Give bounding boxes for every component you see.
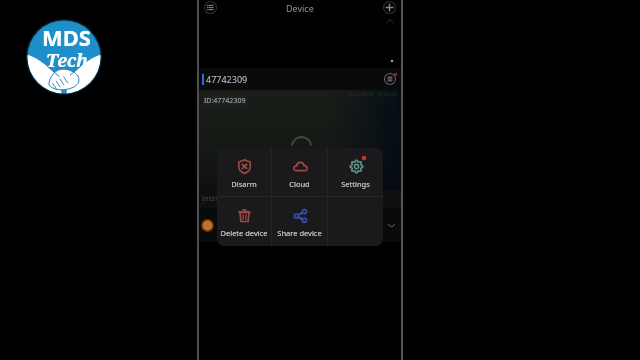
staticText: 2023-08-02 15:53:24 [348, 91, 397, 98]
button[interactable]: Device options [384, 73, 396, 85]
button[interactable]: Expand [387, 221, 396, 230]
staticText: 47742309 [206, 73, 248, 85]
staticText: Settings [341, 179, 370, 189]
button[interactable]: Share device [272, 197, 327, 246]
staticText: Share device [277, 228, 322, 238]
staticText: Delete device [220, 228, 268, 238]
button[interactable]: Cloud [272, 148, 327, 196]
staticText: Intercom [202, 194, 233, 204]
button[interactable]: Delete device [217, 197, 271, 246]
staticText: Device [286, 2, 314, 14]
staticText: Disarm [231, 179, 257, 189]
staticText: ID:47742309 [204, 96, 246, 106]
button[interactable]: Settings [328, 148, 383, 196]
staticText: Cloud [289, 179, 310, 189]
button[interactable]: Add device [383, 1, 396, 14]
button[interactable]: Disarm [217, 148, 271, 196]
staticText: Tech [46, 48, 89, 73]
staticText: MDS [42, 22, 91, 52]
button[interactable]: Menu [204, 1, 217, 14]
